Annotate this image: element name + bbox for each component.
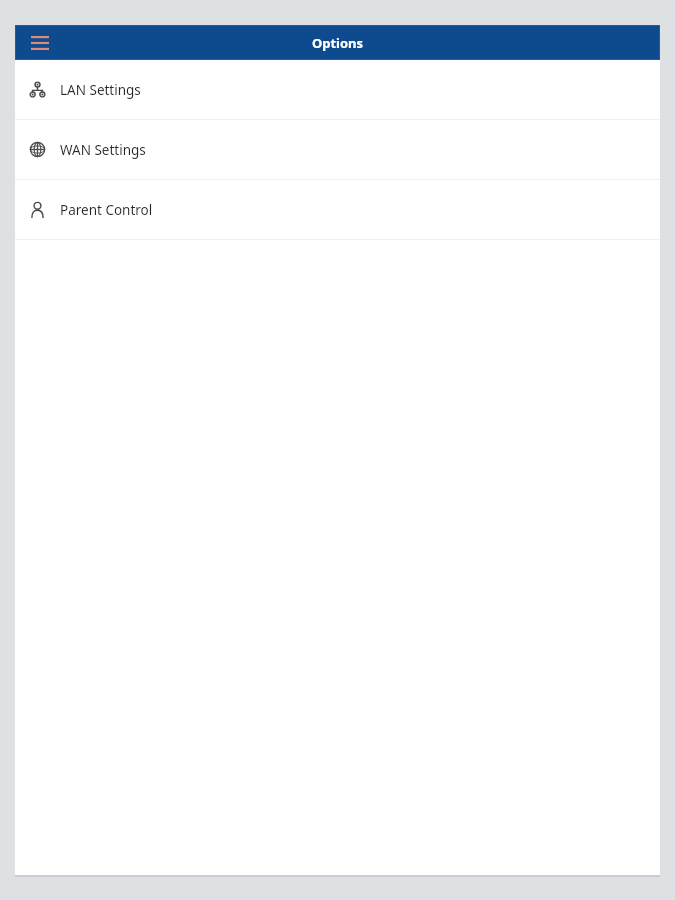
- staticText: LAN Settings: [60, 81, 141, 99]
- button[interactable]: Parent Control: [15, 180, 660, 239]
- staticText: Options: [16, 34, 659, 52]
- staticText: Parent Control: [60, 201, 153, 219]
- button[interactable]: LAN Settings: [15, 60, 660, 119]
- staticText: WAN Settings: [60, 141, 146, 159]
- button[interactable]: Open navigation menu: [26, 29, 54, 57]
- button[interactable]: WAN Settings: [15, 120, 660, 179]
